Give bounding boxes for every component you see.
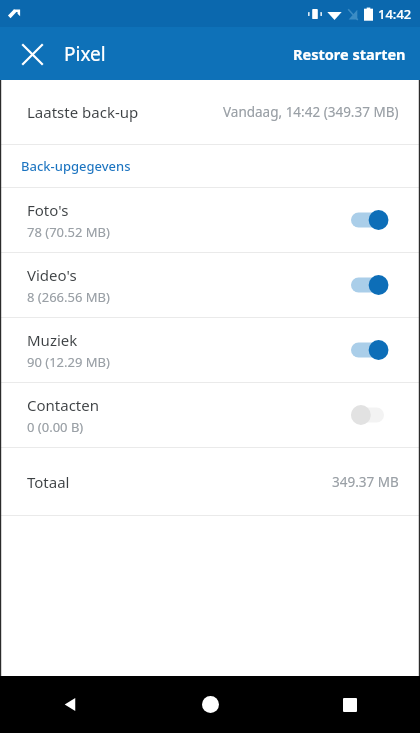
button[interactable]: Contacten [0, 383, 420, 447]
staticText: Vandaag, 14:42 (349.37 MB) [223, 103, 399, 121]
button[interactable]: Totaal [0, 448, 420, 515]
button[interactable]: Restore starten [279, 27, 420, 80]
button[interactable]: Foto's [0, 188, 420, 252]
staticText: Back-upgegevens [21, 157, 131, 175]
staticText: 78 (70.52 MB) [27, 223, 110, 241]
button[interactable]: Terug [0, 676, 140, 733]
button[interactable]: Muziek [0, 318, 420, 382]
button[interactable]: Laatste back-up [0, 80, 420, 144]
button[interactable]: Recente apps [280, 676, 420, 733]
staticText: Restore starten [293, 44, 406, 64]
button[interactable]: Video's [0, 253, 420, 317]
staticText: Totaal [27, 472, 70, 492]
button[interactable]: Sluiten [12, 34, 52, 74]
staticText: Laatste back-up [27, 102, 139, 122]
staticText: 349.37 MB [332, 473, 399, 491]
staticText: 90 (12.29 MB) [27, 353, 110, 371]
staticText: 0 (0.00 B) [27, 418, 84, 436]
button[interactable]: Home [140, 676, 280, 733]
staticText: Contacten [27, 395, 100, 415]
staticText: 14:42 [378, 5, 412, 23]
staticText: Video's [27, 265, 77, 285]
staticText: 8 (266.56 MB) [27, 288, 110, 306]
staticText: Foto's [27, 200, 69, 220]
staticText: Muziek [27, 330, 78, 350]
staticText: Pixel [64, 41, 106, 67]
